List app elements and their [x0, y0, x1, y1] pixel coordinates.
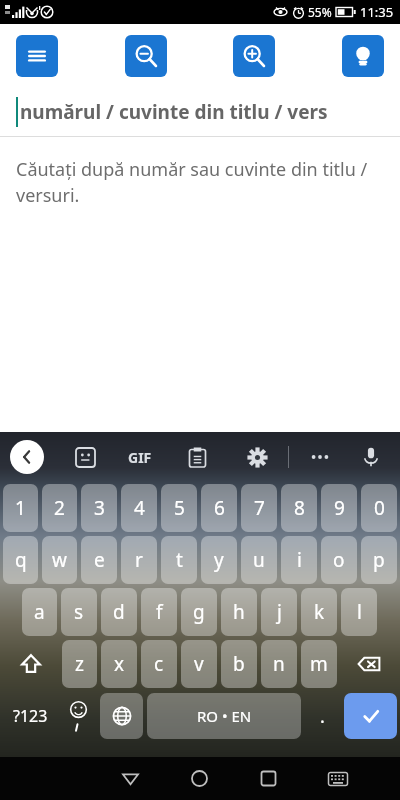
button[interactable]: k	[301, 588, 337, 636]
staticText: k	[314, 599, 325, 625]
button[interactable]: 9	[321, 484, 357, 532]
staticText: v	[194, 651, 204, 677]
button[interactable]: 6	[201, 484, 237, 532]
button[interactable]: 5	[161, 484, 197, 532]
button[interactable]: h	[221, 588, 257, 636]
staticText: z	[75, 651, 84, 677]
button[interactable]: Menu	[16, 35, 58, 77]
staticText: t	[176, 547, 183, 573]
staticText: u	[253, 547, 265, 573]
staticText: p	[373, 547, 385, 573]
button[interactable]: ?123	[3, 693, 57, 739]
button[interactable]: Hint	[342, 35, 384, 77]
button[interactable]: u	[241, 536, 277, 584]
button[interactable]: 1	[3, 484, 38, 532]
button[interactable]: f	[141, 588, 177, 636]
button[interactable]: r	[121, 536, 157, 584]
staticText: l	[357, 599, 362, 625]
staticText: s	[74, 599, 84, 625]
button[interactable]: .	[305, 693, 340, 739]
button[interactable]: Emoji	[61, 693, 96, 739]
staticText: 8	[294, 495, 305, 521]
button[interactable]: w	[42, 536, 77, 584]
button[interactable]: Zoom in	[233, 35, 275, 77]
button[interactable]: Clipboard	[182, 442, 212, 472]
staticText: w	[52, 547, 67, 573]
button[interactable]: Enter	[344, 693, 397, 739]
button[interactable]: Home	[165, 757, 234, 800]
button[interactable]: q	[3, 536, 38, 584]
staticText: h	[233, 599, 245, 625]
button[interactable]: Recents	[234, 757, 303, 800]
staticText: GIF	[128, 448, 152, 467]
staticText: n	[273, 651, 285, 677]
button[interactable]: 3	[81, 484, 117, 532]
staticText: numărul / cuvinte din titlu / vers	[20, 99, 328, 125]
staticText: e	[94, 547, 105, 573]
button[interactable]: s	[61, 588, 97, 636]
button[interactable]: l	[341, 588, 377, 636]
button[interactable]: Back	[10, 440, 44, 474]
staticText: 55%	[308, 4, 332, 20]
staticText: f	[156, 599, 163, 625]
staticText: 4	[134, 495, 145, 521]
button[interactable]: g	[181, 588, 217, 636]
staticText: 11:35	[360, 3, 394, 21]
button[interactable]: a	[22, 588, 57, 636]
staticText: .	[320, 704, 325, 729]
staticText: 9	[334, 495, 345, 521]
button[interactable]: 2	[42, 484, 77, 532]
staticText: 7	[254, 495, 265, 521]
button[interactable]: RO • EN	[147, 693, 301, 739]
button[interactable]: GIF	[128, 448, 152, 467]
button[interactable]: Hide keyboard	[303, 757, 372, 800]
button[interactable]: b	[221, 640, 257, 688]
staticText: r	[135, 547, 143, 573]
button[interactable]: Change language	[100, 693, 143, 739]
button[interactable]: Voice input	[356, 442, 386, 472]
button[interactable]: 8	[281, 484, 317, 532]
staticText: 5	[174, 495, 185, 521]
staticText: g	[193, 599, 205, 625]
button[interactable]: 4	[121, 484, 157, 532]
staticText: o	[333, 547, 345, 573]
button[interactable]: Shift	[3, 640, 58, 688]
button[interactable]: x	[101, 640, 137, 688]
staticText: a	[34, 599, 45, 625]
button[interactable]: j	[261, 588, 297, 636]
staticText: 0	[374, 495, 385, 521]
button[interactable]: m	[301, 640, 337, 688]
button[interactable]: v	[181, 640, 217, 688]
staticText: y	[214, 547, 224, 573]
staticText: x	[114, 651, 125, 677]
staticText: b	[233, 651, 245, 677]
button[interactable]: Backspace	[341, 640, 397, 688]
button[interactable]: t	[161, 536, 197, 584]
staticText: m	[310, 651, 328, 677]
staticText: q	[15, 547, 27, 573]
staticText: i	[297, 547, 302, 573]
button[interactable]: Back	[96, 757, 165, 800]
button[interactable]: d	[101, 588, 137, 636]
staticText: 2	[54, 495, 65, 521]
button[interactable]: p	[361, 536, 397, 584]
staticText: 6	[214, 495, 225, 521]
button[interactable]: 7	[241, 484, 277, 532]
button[interactable]: i	[281, 536, 317, 584]
button[interactable]: o	[321, 536, 357, 584]
button[interactable]: Zoom out	[125, 35, 167, 77]
button[interactable]: Stickers	[70, 442, 100, 472]
staticText: j	[277, 599, 282, 625]
button[interactable]: e	[81, 536, 117, 584]
staticText: d	[113, 599, 125, 625]
button[interactable]: c	[141, 640, 177, 688]
button[interactable]: 0	[361, 484, 397, 532]
staticText: 3	[94, 495, 105, 521]
button[interactable]: n	[261, 640, 297, 688]
button[interactable]: More	[305, 442, 335, 472]
button[interactable]: z	[62, 640, 97, 688]
button[interactable]: y	[201, 536, 237, 584]
staticText: Căutați după număr sau cuvinte din titlu…	[16, 157, 376, 207]
staticText: c	[154, 651, 164, 677]
button[interactable]: Settings	[242, 442, 272, 472]
